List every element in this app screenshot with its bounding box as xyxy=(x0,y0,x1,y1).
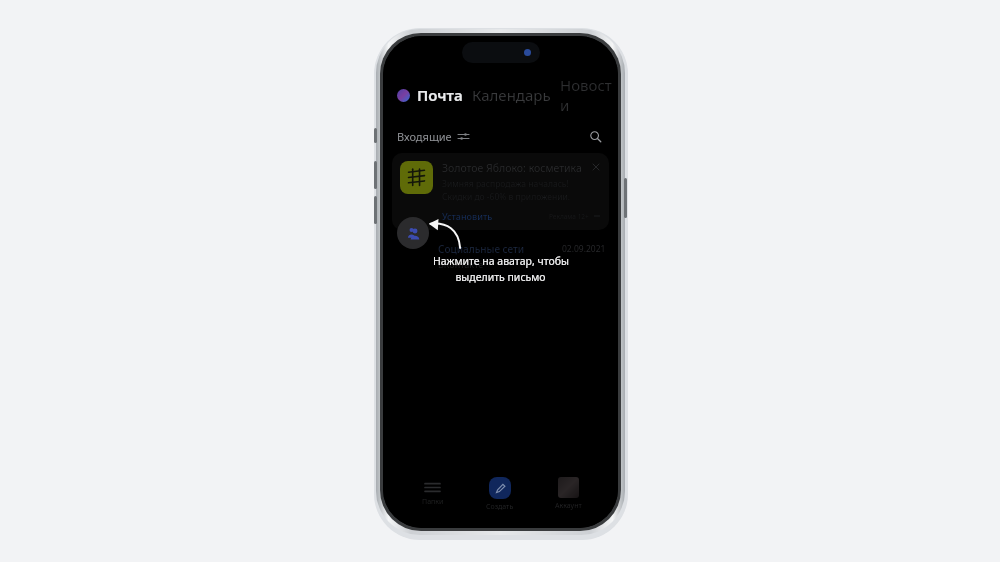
button[interactable]: Аккаунт xyxy=(534,475,602,513)
staticText: 02.09.2021 xyxy=(562,243,606,255)
staticText: Почта xyxy=(417,85,463,105)
staticText: Входящие xyxy=(397,129,452,144)
staticText: Зимняя распродажа началась! xyxy=(442,178,569,190)
staticText: Создать xyxy=(486,502,514,512)
staticText: выделить письмо xyxy=(455,270,546,284)
staticText: Нажмите на аватар, чтобы xyxy=(433,254,569,268)
button[interactable]: Закрыть xyxy=(590,161,601,172)
staticText: Реклама 12+ xyxy=(549,212,589,221)
staticText: Скидки до -60% в приложении. xyxy=(442,191,571,203)
staticText: Папки xyxy=(422,497,444,507)
staticText: ВКонтакте xyxy=(438,258,484,270)
button[interactable]: Золотое Яблоко: косметика xyxy=(392,153,609,230)
button[interactable]: Новости xyxy=(560,75,618,115)
staticText: Золотое Яблоко: косметика xyxy=(442,161,582,175)
button[interactable]: Меню рекламы xyxy=(593,212,601,220)
button[interactable]: Социальные сети xyxy=(383,238,618,274)
button[interactable]: Папки xyxy=(399,480,466,509)
staticText: Социальные сети xyxy=(438,242,562,256)
button[interactable]: Установить xyxy=(442,210,493,222)
button[interactable]: Создать xyxy=(466,475,534,514)
staticText: Аккаунт xyxy=(555,501,582,511)
button[interactable]: Фильтр xyxy=(457,130,469,142)
button[interactable]: Календарь xyxy=(472,85,551,105)
button[interactable]: Аватар отправителя xyxy=(397,217,429,249)
button[interactable]: Поиск xyxy=(586,127,604,145)
